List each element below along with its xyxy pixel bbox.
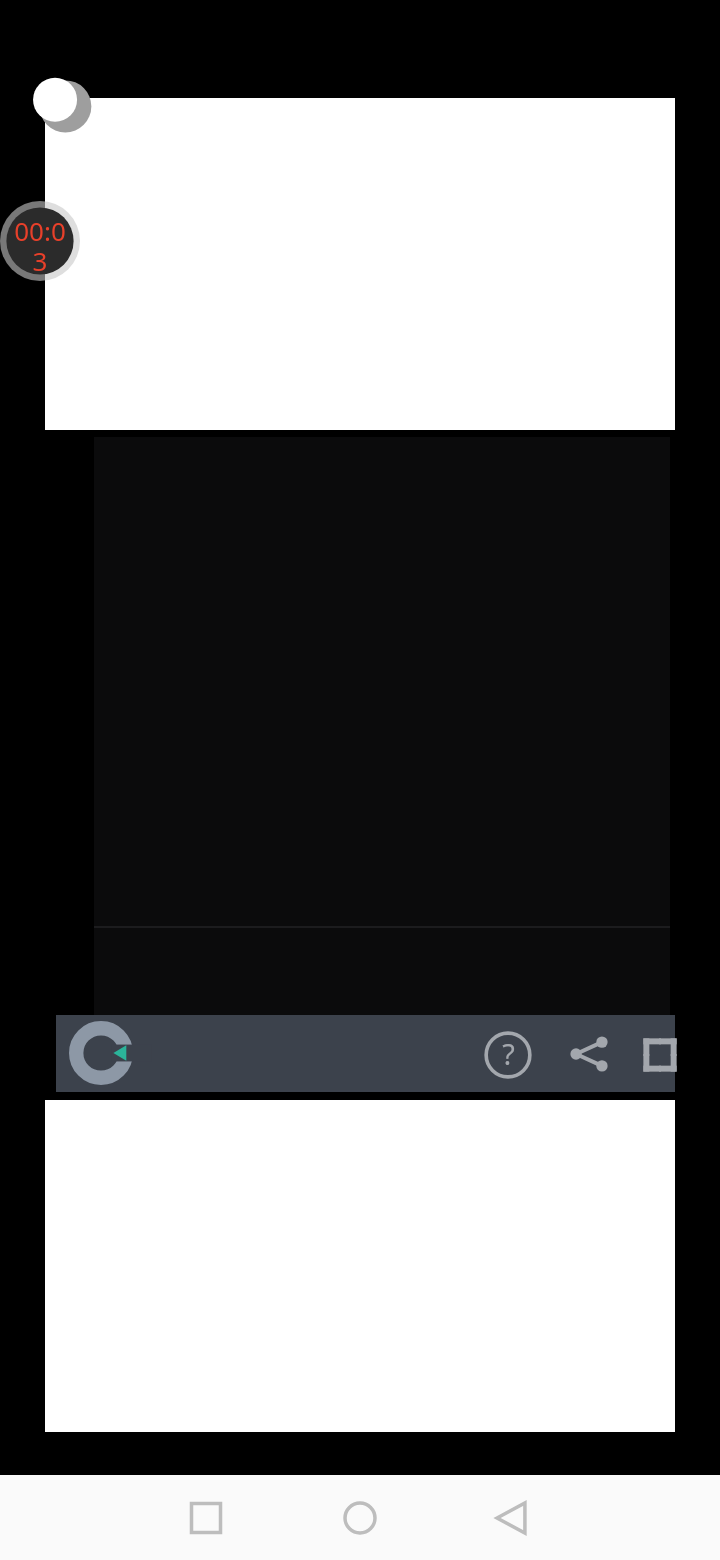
- button[interactable]: Floating control: [28, 72, 94, 138]
- button[interactable]: Recent apps: [161, 1475, 251, 1560]
- button[interactable]: 00:03: [0, 201, 80, 281]
- staticText: 00:03: [12, 213, 68, 277]
- staticText: ?: [502, 1034, 515, 1073]
- button[interactable]: Player logo: [70, 1022, 132, 1084]
- button[interactable]: Help: [480, 1027, 536, 1083]
- button[interactable]: Home: [315, 1475, 405, 1560]
- button[interactable]: Share: [562, 1027, 616, 1081]
- button[interactable]: Fullscreen: [634, 1029, 686, 1081]
- button[interactable]: Back: [467, 1475, 557, 1560]
